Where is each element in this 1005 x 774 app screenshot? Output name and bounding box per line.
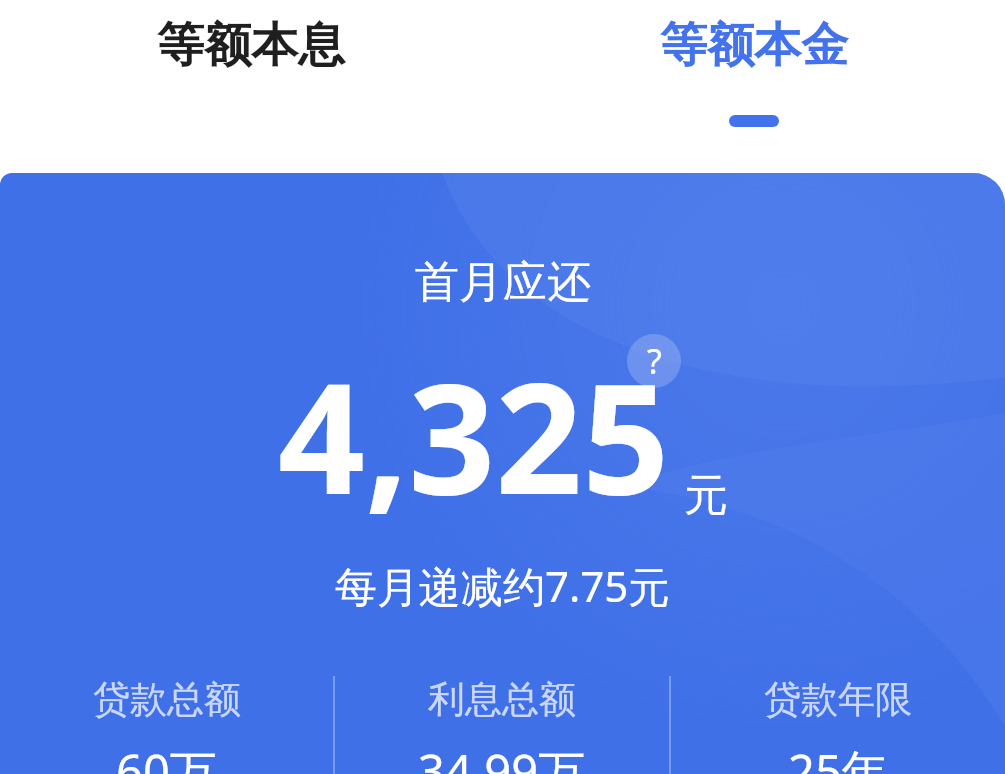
- staticText: 贷款总额: [93, 676, 241, 723]
- staticText: 首月应还: [415, 255, 591, 310]
- staticText: 34.99万: [418, 739, 586, 774]
- button[interactable]: 利息总额: [335, 676, 669, 774]
- button[interactable]: 贷款年限: [671, 676, 1005, 774]
- button[interactable]: 说明: [627, 334, 681, 388]
- button[interactable]: 等额本金: [502, 0, 1005, 173]
- staticText: 等额本金: [660, 16, 848, 75]
- staticText: 等额本息: [157, 16, 345, 75]
- button[interactable]: 贷款总额: [0, 676, 333, 774]
- staticText: 利息总额: [428, 676, 576, 723]
- staticText: 元: [684, 468, 728, 523]
- button[interactable]: 等额本息: [0, 0, 502, 173]
- staticText: 4,325: [278, 332, 670, 539]
- staticText: 每月递减约7.75元: [335, 557, 671, 614]
- staticText: 25年: [788, 739, 889, 774]
- staticText: 60万: [116, 739, 217, 774]
- staticText: ?: [647, 338, 662, 384]
- staticText: 贷款年限: [764, 676, 912, 723]
